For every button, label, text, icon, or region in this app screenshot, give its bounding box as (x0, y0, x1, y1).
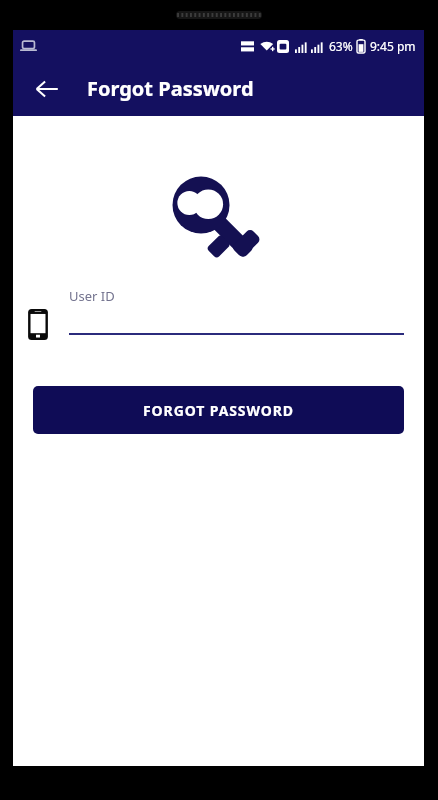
staticText: User ID (69, 287, 115, 305)
button[interactable]: Back (25, 67, 69, 111)
staticText: FORGOT PASSWORD (143, 401, 294, 420)
staticText: 9:45 pm (370, 38, 416, 54)
staticText: Forgot Password (87, 75, 254, 102)
button[interactable]: FORGOT PASSWORD (33, 386, 404, 434)
button[interactable]: User ID (69, 287, 404, 335)
staticText: 63% (329, 38, 353, 54)
